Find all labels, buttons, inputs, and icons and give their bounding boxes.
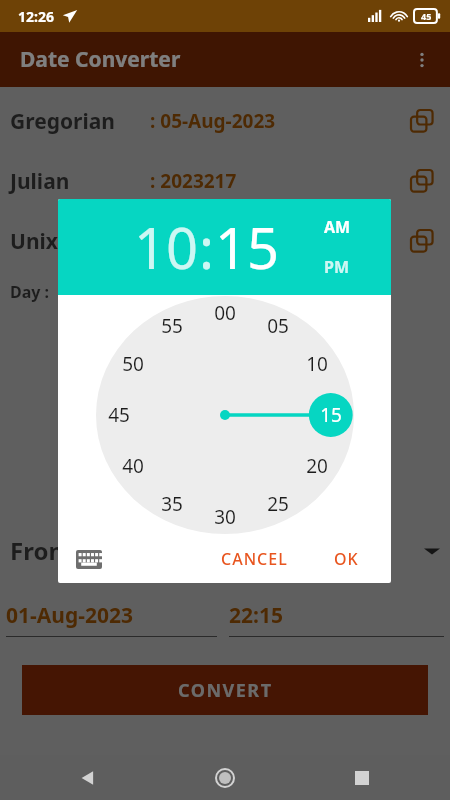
- staticText: 22:15: [229, 601, 283, 630]
- staticText: : 05-Aug-2023: [150, 108, 276, 134]
- staticText: 35: [161, 491, 183, 517]
- staticText: 15: [320, 402, 342, 428]
- staticText: 55: [161, 313, 183, 339]
- button[interactable]: Copy Unix: [404, 223, 440, 259]
- staticText: 10: [306, 351, 328, 377]
- staticText: :: [199, 209, 215, 285]
- staticText: : 2023217: [150, 168, 237, 194]
- staticText: Date Converter: [20, 45, 181, 74]
- staticText: 45: [421, 10, 432, 22]
- staticText: 45: [108, 402, 130, 428]
- button[interactable]: 50: [115, 351, 151, 377]
- staticText: 20: [306, 453, 328, 479]
- button[interactable]: PM: [324, 254, 350, 280]
- button[interactable]: 15: [215, 209, 280, 285]
- button[interactable]: 10: [299, 351, 335, 377]
- staticText: 00: [214, 300, 236, 326]
- button[interactable]: Copy Julian: [404, 163, 440, 199]
- staticText: 05: [267, 313, 289, 339]
- staticText: Gregorian: [205, 538, 291, 563]
- button[interactable]: 15: [313, 402, 349, 428]
- button[interactable]: 25: [260, 491, 296, 517]
- button[interactable]: 10: [134, 209, 199, 285]
- staticText: 50: [122, 351, 144, 377]
- staticText: Gregorian: [10, 107, 150, 136]
- staticText: From: [10, 534, 72, 567]
- button[interactable]: 05: [260, 313, 296, 339]
- button[interactable]: More options: [402, 40, 442, 80]
- staticText: Day :: [10, 281, 50, 303]
- button[interactable]: 35: [154, 491, 190, 517]
- staticText: : 1691220600: [150, 228, 269, 254]
- button[interactable]: CANCEL: [209, 540, 300, 578]
- staticText: Julian: [10, 167, 150, 196]
- button[interactable]: 20: [299, 453, 335, 479]
- button[interactable]: Copy Gregorian: [404, 103, 440, 139]
- button[interactable]: CONVERT: [22, 665, 428, 715]
- button[interactable]: 45: [101, 402, 137, 428]
- button[interactable]: Switch to keyboard input: [70, 540, 108, 578]
- button[interactable]: 40: [115, 453, 151, 479]
- button[interactable]: Recent apps: [344, 760, 380, 796]
- button[interactable]: Home: [207, 760, 243, 796]
- button[interactable]: OK: [322, 540, 371, 578]
- staticText: CANCEL: [221, 548, 288, 570]
- button[interactable]: AM: [324, 214, 351, 240]
- staticText: CONVERT: [178, 678, 273, 703]
- staticText: 01-Aug-2023: [6, 601, 133, 630]
- staticText: OK: [334, 548, 359, 570]
- staticText: 25: [267, 491, 289, 517]
- button[interactable]: Back: [70, 760, 106, 796]
- button[interactable]: 00: [207, 300, 243, 326]
- staticText: Unix: [10, 227, 150, 256]
- button[interactable]: 55: [154, 313, 190, 339]
- staticText: 30: [214, 504, 236, 530]
- staticText: 40: [122, 453, 144, 479]
- staticText: 12:26: [18, 7, 54, 26]
- button[interactable]: 30: [207, 504, 243, 530]
